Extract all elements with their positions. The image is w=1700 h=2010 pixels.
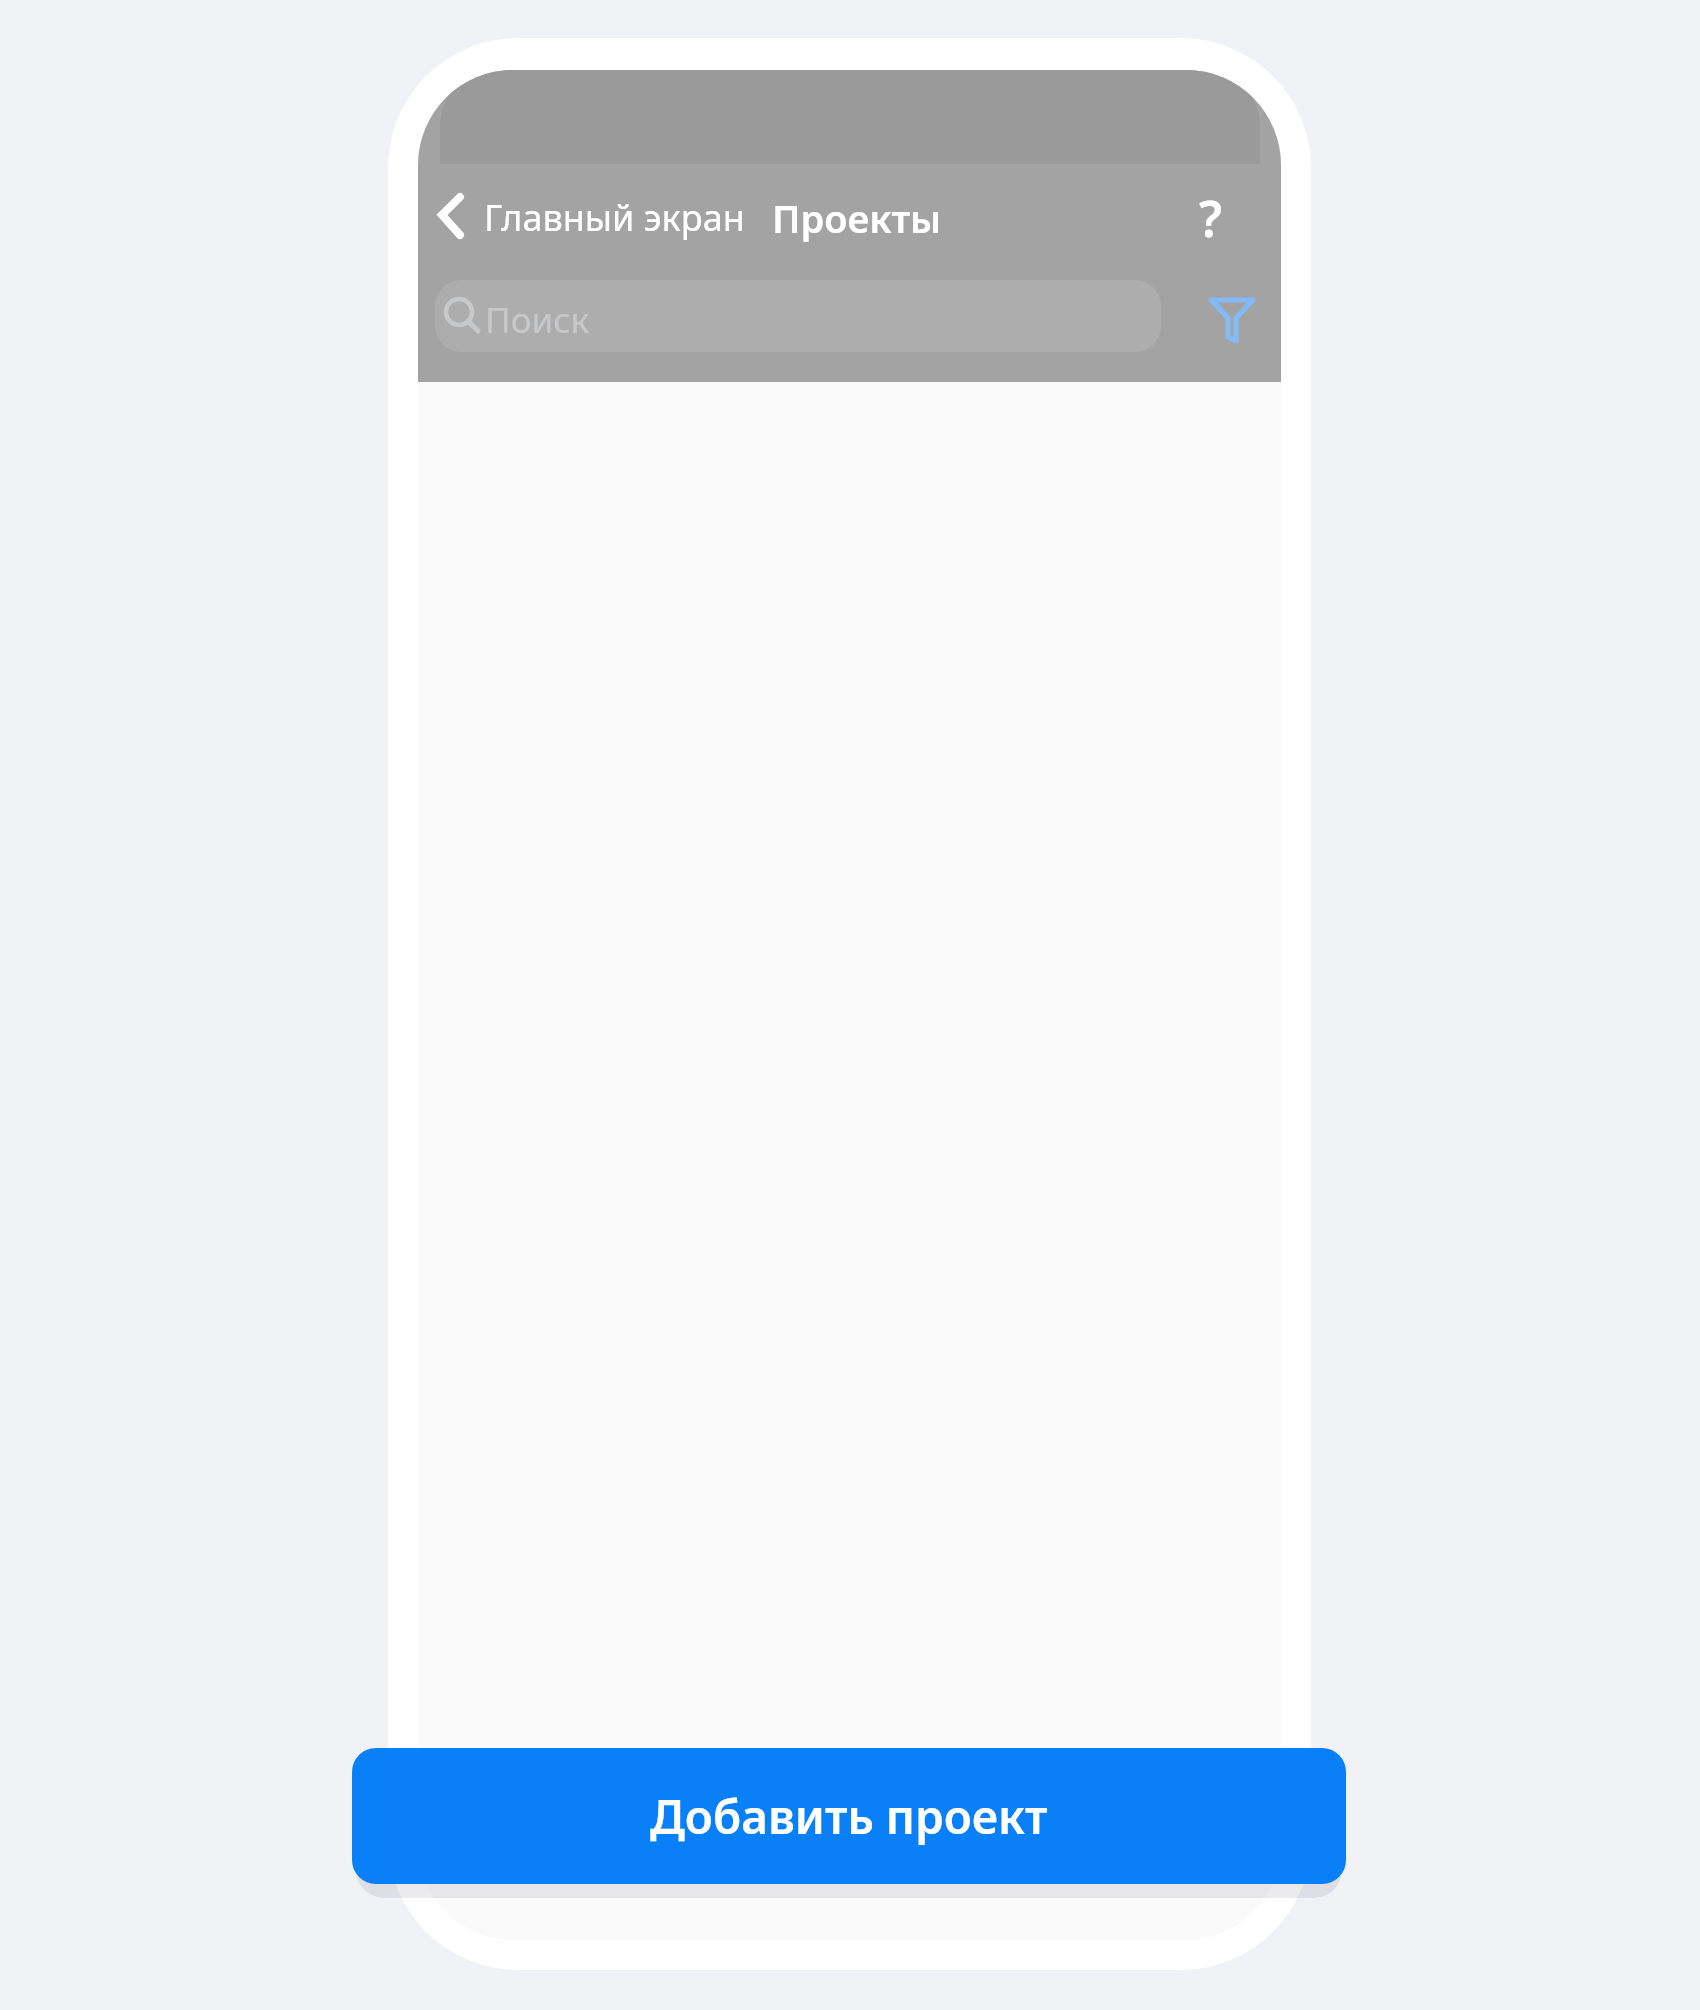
button[interactable]: ? [1199,184,1223,252]
button[interactable]: Главный экран [484,193,745,242]
button[interactable] [1209,298,1255,346]
button[interactable]: Поиск [435,280,1161,352]
staticText: Поиск [485,296,590,344]
button[interactable] [438,194,464,238]
staticText: Добавить проект [650,1785,1048,1848]
staticText: Проекты [772,192,942,244]
button[interactable]: Добавить проект [352,1748,1346,1884]
